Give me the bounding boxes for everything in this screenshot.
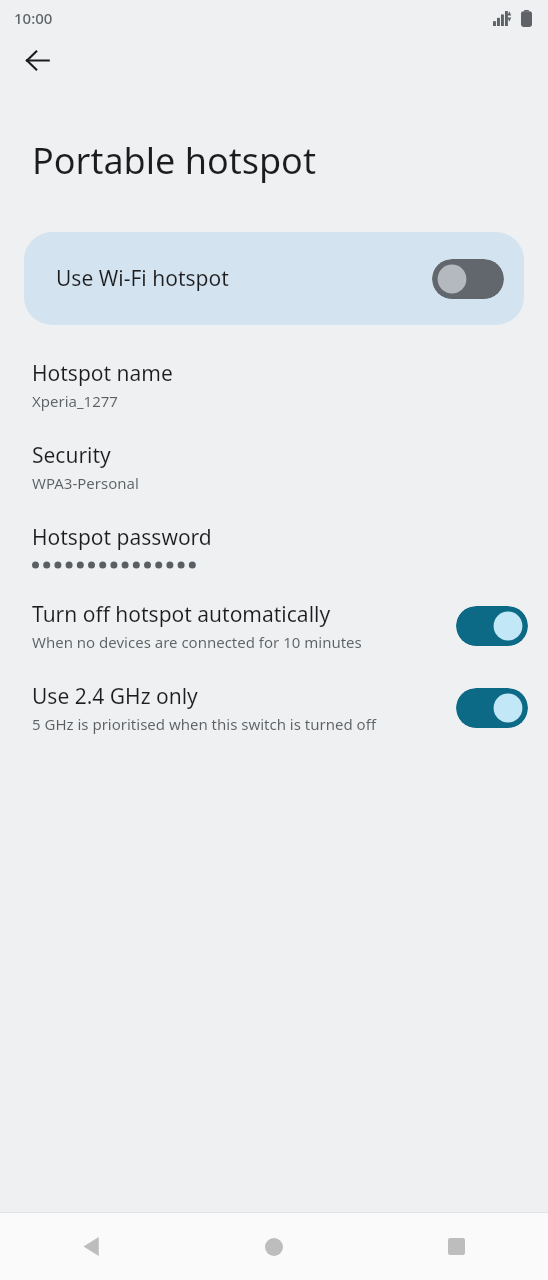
staticText: Hotspot password [32,523,212,552]
button[interactable]: Use Wi-Fi hotspot [24,232,524,325]
staticText: WPA3-Personal [32,473,139,493]
staticText: Turn off hotspot automatically [32,600,331,629]
button[interactable]: Turn off hotspot automatically [0,600,548,652]
button[interactable]: Hotspot name [0,359,548,411]
staticText: Use Wi-Fi hotspot [56,264,229,293]
staticText: When no devices are connected for 10 min… [32,632,362,652]
staticText: Portable hotspot [32,136,316,185]
button[interactable]: Hotspot password [0,523,548,572]
button[interactable]: Security [0,441,548,493]
button[interactable]: On [456,606,528,646]
button[interactable]: Recent apps [365,1213,548,1280]
staticText: Use 2.4 GHz only [32,682,198,711]
button[interactable]: Use 2.4 GHz only [0,682,548,734]
staticText: 10:00 [14,8,53,28]
staticText: Xperia_1277 [32,391,118,411]
button[interactable]: Home [182,1213,365,1280]
button[interactable]: Back [13,36,61,84]
staticText: Hotspot name [32,359,173,388]
button[interactable]: On [456,688,528,728]
staticText: 5 GHz is prioritised when this switch is… [32,714,376,734]
button[interactable]: Off [432,259,504,299]
button[interactable]: Back [0,1213,182,1280]
staticText: Security [32,441,111,470]
